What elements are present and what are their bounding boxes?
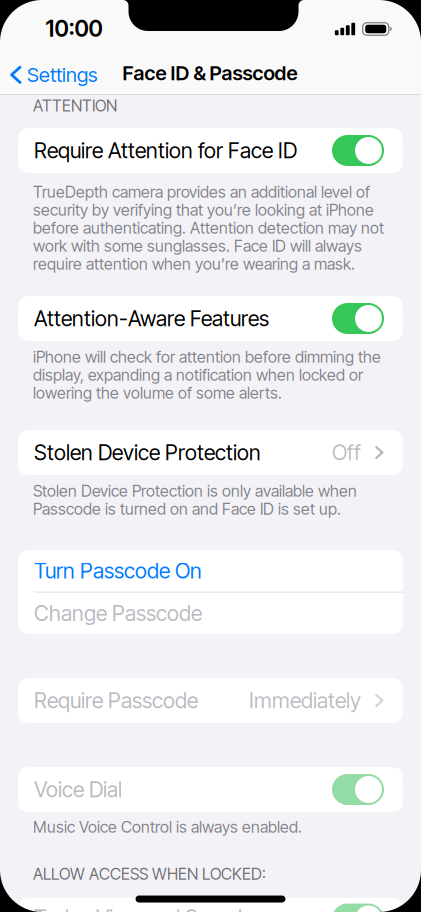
button[interactable]: Attention-Aware Features xyxy=(18,296,403,341)
staticText: Stolen Device Protection is only availab… xyxy=(33,482,357,500)
staticText: Voice Dial xyxy=(34,777,122,802)
button[interactable]: Back to Settings xyxy=(0,52,98,87)
staticText: Require Passcode xyxy=(34,688,198,713)
staticText: Off xyxy=(332,440,361,465)
staticText: Today View and Search xyxy=(34,905,250,912)
staticText: require attention when you’re wearing a … xyxy=(33,255,355,273)
staticText: 10:00 xyxy=(45,15,102,42)
staticText: Face ID & Passcode xyxy=(122,61,297,85)
staticText: display, expanding a notification when l… xyxy=(33,366,363,384)
staticText: security by verifying that you’re lookin… xyxy=(33,201,374,219)
staticText: ATTENTION xyxy=(33,96,117,115)
button[interactable]: Change Passcode xyxy=(18,592,403,634)
staticText: work with some sunglasses. Face ID will … xyxy=(33,237,362,255)
button[interactable]: Toggle xyxy=(332,774,384,805)
staticText: Settings xyxy=(27,63,98,87)
staticText: Attention-Aware Features xyxy=(34,306,269,331)
staticText: Passcode is turned on and Face ID is set… xyxy=(33,500,341,518)
staticText: Stolen Device Protection xyxy=(34,440,261,465)
staticText: before authenticating. Attention detecti… xyxy=(33,219,384,237)
button[interactable]: Require Passcode xyxy=(18,678,403,723)
staticText: Require Attention for Face ID xyxy=(34,138,297,163)
staticText: lowering the volume of some alerts. xyxy=(33,384,282,402)
button[interactable]: Toggle xyxy=(332,903,384,912)
staticText: iPhone will check for attention before d… xyxy=(33,348,381,366)
staticText: ALLOW ACCESS WHEN LOCKED: xyxy=(33,865,266,883)
staticText: Immediately xyxy=(249,688,361,713)
staticText: Music Voice Control is always enabled. xyxy=(33,818,302,836)
staticText: TrueDepth camera provides an additional … xyxy=(33,183,370,201)
button[interactable]: Stolen Device Protection xyxy=(18,430,403,475)
button[interactable]: Require Attention for Face ID xyxy=(18,128,403,173)
staticText: Turn Passcode On xyxy=(34,558,202,583)
button[interactable]: Turn Passcode On xyxy=(18,550,403,592)
button[interactable]: Toggle xyxy=(332,135,384,166)
button[interactable]: Toggle xyxy=(332,303,384,334)
staticText: Change Passcode xyxy=(34,601,202,626)
